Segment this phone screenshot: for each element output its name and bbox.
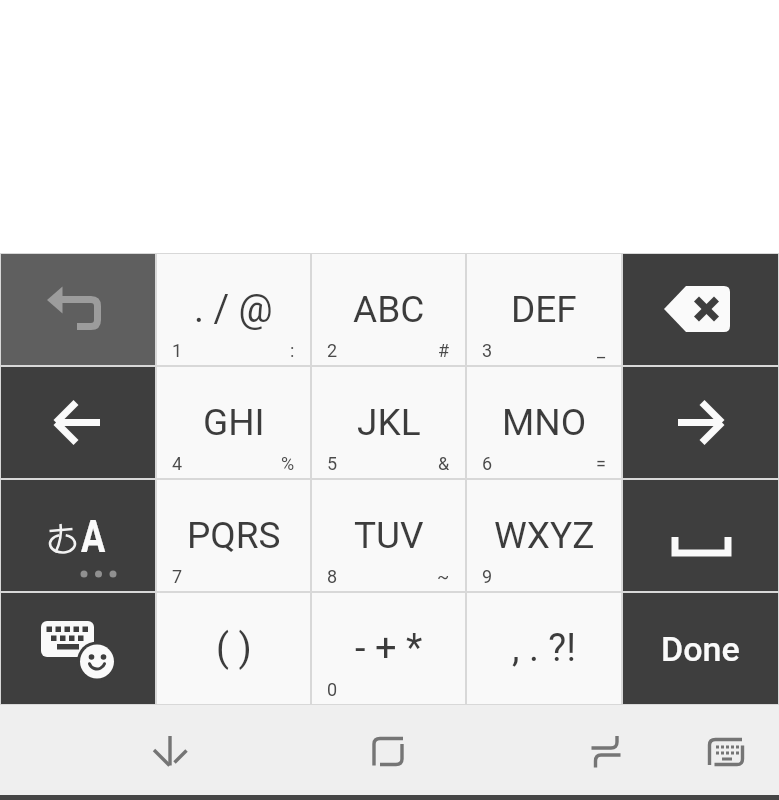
staticText: %	[281, 453, 295, 474]
button[interactable]: WXYZ	[467, 480, 621, 591]
staticText: =	[596, 453, 606, 474]
button[interactable]	[694, 719, 758, 783]
staticText: 1	[172, 340, 183, 361]
button[interactable]: PQRS	[157, 480, 310, 591]
staticText: TUV	[354, 514, 424, 557]
button[interactable]: ABC	[312, 254, 465, 365]
staticText: 6	[482, 453, 493, 474]
button[interactable]: JKL	[312, 367, 465, 478]
button[interactable]: Done	[623, 593, 778, 704]
staticText: . / @	[194, 287, 273, 332]
button[interactable]: A	[1, 480, 155, 591]
button[interactable]	[138, 719, 202, 783]
button[interactable]: , . ?!	[467, 593, 621, 704]
staticText: JKL	[357, 401, 421, 444]
staticText: DEF	[511, 288, 577, 331]
staticText: 4	[172, 453, 183, 474]
button[interactable]	[623, 254, 778, 365]
staticText: 2	[327, 340, 338, 361]
staticText: 5	[327, 453, 338, 474]
staticText: 3	[482, 340, 493, 361]
staticText: , . ?!	[512, 626, 577, 671]
button[interactable]	[1, 593, 155, 704]
staticText: MNO	[502, 401, 587, 444]
staticText: GHI	[203, 401, 265, 444]
staticText: A	[81, 510, 106, 563]
staticText: Done	[661, 629, 740, 669]
button[interactable]	[623, 367, 778, 478]
staticText: &	[438, 453, 450, 474]
button[interactable]	[1, 367, 155, 478]
staticText: #	[438, 340, 450, 361]
staticText: ~	[437, 566, 450, 587]
staticText: 0	[327, 679, 338, 700]
button[interactable]: GHI	[157, 367, 310, 478]
button[interactable]	[356, 719, 420, 783]
button[interactable]: ( )	[157, 593, 310, 704]
staticText: PQRS	[187, 514, 281, 557]
button[interactable]: MNO	[467, 367, 621, 478]
button[interactable]	[623, 480, 778, 591]
staticText: 7	[172, 566, 183, 587]
staticText: 8	[327, 566, 338, 587]
staticText: _	[597, 340, 606, 361]
button[interactable]	[1, 254, 155, 365]
staticText: :	[290, 340, 295, 361]
button[interactable]: TUV	[312, 480, 465, 591]
staticText: - + *	[355, 626, 423, 671]
staticText: ABC	[353, 288, 425, 331]
staticText: WXYZ	[494, 514, 595, 557]
button[interactable]	[574, 719, 638, 783]
staticText: 9	[482, 566, 493, 587]
button[interactable]: - + *	[312, 593, 465, 704]
staticText: ( )	[216, 626, 252, 671]
button[interactable]: . / @	[157, 254, 310, 365]
button[interactable]: DEF	[467, 254, 621, 365]
